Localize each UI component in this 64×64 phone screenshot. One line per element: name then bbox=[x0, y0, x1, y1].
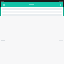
button[interactable]: More options bbox=[59, 3, 62, 6]
button[interactable]: Menu bbox=[0, 2, 64, 7]
button[interactable]: Menu bbox=[2, 3, 5, 6]
